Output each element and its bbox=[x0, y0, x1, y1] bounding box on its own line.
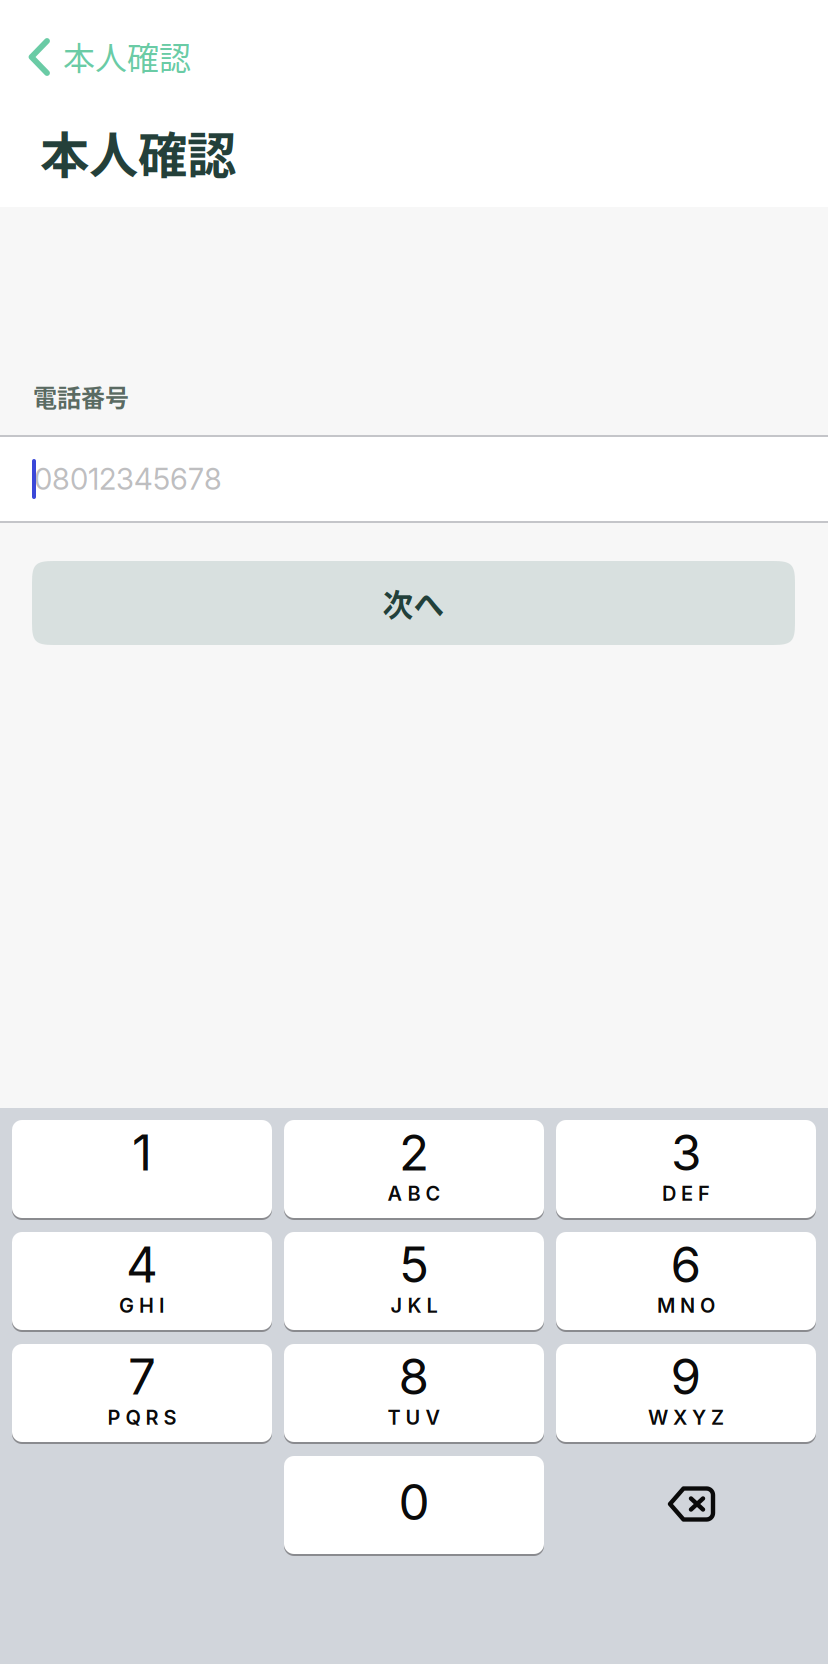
staticText: 4 bbox=[126, 1235, 158, 1294]
staticText: 次へ bbox=[382, 581, 444, 625]
button[interactable]: 0 bbox=[284, 1456, 544, 1556]
button[interactable]: 7 bbox=[12, 1344, 272, 1444]
button[interactable]: 6 bbox=[556, 1232, 816, 1332]
button[interactable]: 4 bbox=[12, 1232, 272, 1332]
button[interactable]: 本人確認 bbox=[0, 25, 326, 87]
staticText: 08012345678 bbox=[34, 461, 222, 497]
staticText: 8 bbox=[398, 1347, 429, 1406]
staticText: G H I bbox=[119, 1293, 165, 1318]
button[interactable]: Delete bbox=[556, 1456, 816, 1556]
staticText: P Q R S bbox=[107, 1405, 176, 1430]
button[interactable]: 2 bbox=[284, 1120, 544, 1220]
staticText: 本人確認 bbox=[63, 33, 191, 79]
button[interactable]: 8 bbox=[284, 1344, 544, 1444]
staticText: 3 bbox=[671, 1123, 701, 1182]
staticText: T U V bbox=[387, 1405, 440, 1430]
button[interactable]: 次へ bbox=[32, 561, 795, 645]
staticText: 本人確認 bbox=[40, 116, 236, 187]
staticText: 9 bbox=[670, 1347, 701, 1406]
staticText: 2 bbox=[399, 1123, 429, 1182]
staticText: 0 bbox=[398, 1472, 429, 1532]
button[interactable]: 1 bbox=[12, 1120, 272, 1220]
staticText: M N O bbox=[657, 1293, 715, 1318]
button[interactable]: 3 bbox=[556, 1120, 816, 1220]
button[interactable]: 5 bbox=[284, 1232, 544, 1332]
staticText: 5 bbox=[399, 1235, 429, 1294]
staticText: W X Y Z bbox=[648, 1405, 724, 1430]
staticText: 電話番号 bbox=[33, 379, 129, 414]
staticText: D E F bbox=[662, 1181, 710, 1206]
button[interactable]: 9 bbox=[556, 1344, 816, 1444]
staticText: 6 bbox=[670, 1235, 701, 1294]
staticText: 1 bbox=[132, 1123, 152, 1182]
staticText: A B C bbox=[387, 1181, 440, 1206]
staticText: J K L bbox=[390, 1293, 437, 1318]
staticText: 7 bbox=[128, 1347, 156, 1406]
